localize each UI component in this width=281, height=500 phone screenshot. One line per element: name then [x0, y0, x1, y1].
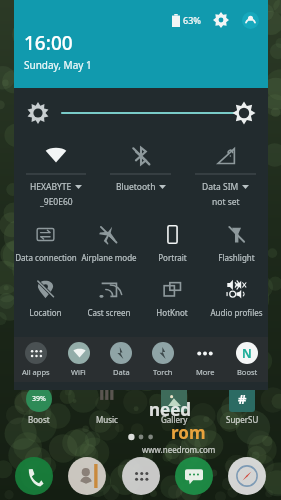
button[interactable]: HotKnot: [140, 271, 204, 326]
staticText: N: [242, 345, 252, 361]
staticText: WiFi: [71, 367, 86, 377]
button[interactable]: Data: [100, 337, 142, 382]
staticText: Data connection: [15, 252, 77, 263]
staticText: Torch: [153, 367, 173, 377]
staticText: HEXABYTE: [30, 181, 72, 193]
button[interactable]: Torch: [142, 337, 184, 382]
button[interactable]: WiFi: [57, 337, 100, 382]
button[interactable]: Settings: [211, 10, 231, 30]
button[interactable]: Cast screen: [77, 271, 140, 326]
staticText: Location: [29, 307, 62, 318]
button[interactable]: Browser: [228, 457, 266, 495]
button[interactable]: Audio profiles: [204, 271, 268, 326]
staticText: 16:00: [24, 30, 73, 56]
staticText: www.needrom.com: [142, 444, 216, 455]
button[interactable]: More: [184, 337, 226, 382]
staticText: Airplane mode: [81, 252, 137, 263]
button[interactable]: Contacts: [68, 457, 106, 495]
staticText: #: [238, 390, 247, 408]
staticText: _9E0E60: [40, 196, 73, 208]
staticText: SuperSU: [226, 414, 259, 425]
button[interactable]: All apps: [14, 337, 57, 382]
button[interactable]: 39%: [11, 386, 67, 425]
button[interactable]: HEXABYTE: [14, 138, 98, 214]
button[interactable]: Gallery: [146, 386, 202, 425]
button[interactable]: #: [214, 386, 270, 425]
button[interactable]: Apps: [122, 457, 160, 495]
staticText: Cast screen: [87, 307, 131, 318]
staticText: Sunday, May 1: [24, 58, 92, 72]
staticText: Bluetooth: [116, 181, 156, 193]
button[interactable]: Music: [79, 386, 135, 425]
button[interactable]: Phone: [15, 457, 53, 495]
staticText: Flashlight: [218, 252, 255, 263]
button[interactable]: Airplane mode: [77, 216, 140, 271]
staticText: rom: [171, 421, 206, 444]
staticText: need: [149, 398, 192, 421]
button[interactable]: Bluetooth: [98, 138, 183, 214]
staticText: not set: [212, 196, 240, 208]
staticText: HotKnot: [156, 307, 188, 318]
button[interactable]: Data connection: [14, 216, 77, 271]
staticText: 39%: [32, 394, 46, 404]
staticText: Boost: [28, 414, 50, 425]
button[interactable]: Brightness: [14, 88, 268, 138]
button[interactable]: Flashlight: [204, 216, 268, 271]
button[interactable]: User: [240, 10, 260, 30]
staticText: Data: [113, 367, 130, 377]
button[interactable]: Messages: [175, 457, 213, 495]
staticText: Audio profiles: [210, 307, 263, 318]
button[interactable]: N: [226, 337, 268, 382]
staticText: Portrait: [158, 252, 187, 263]
staticText: Music: [96, 414, 118, 425]
staticText: 63%: [183, 14, 201, 26]
staticText: All apps: [22, 367, 50, 377]
staticText: More: [196, 367, 215, 377]
staticText: Boost: [237, 367, 258, 377]
staticText: Data SIM: [202, 181, 239, 193]
button[interactable]: Portrait: [140, 216, 204, 271]
button[interactable]: Data SIM: [183, 138, 268, 214]
button[interactable]: Location: [14, 271, 77, 326]
staticText: Gallery: [161, 414, 188, 425]
